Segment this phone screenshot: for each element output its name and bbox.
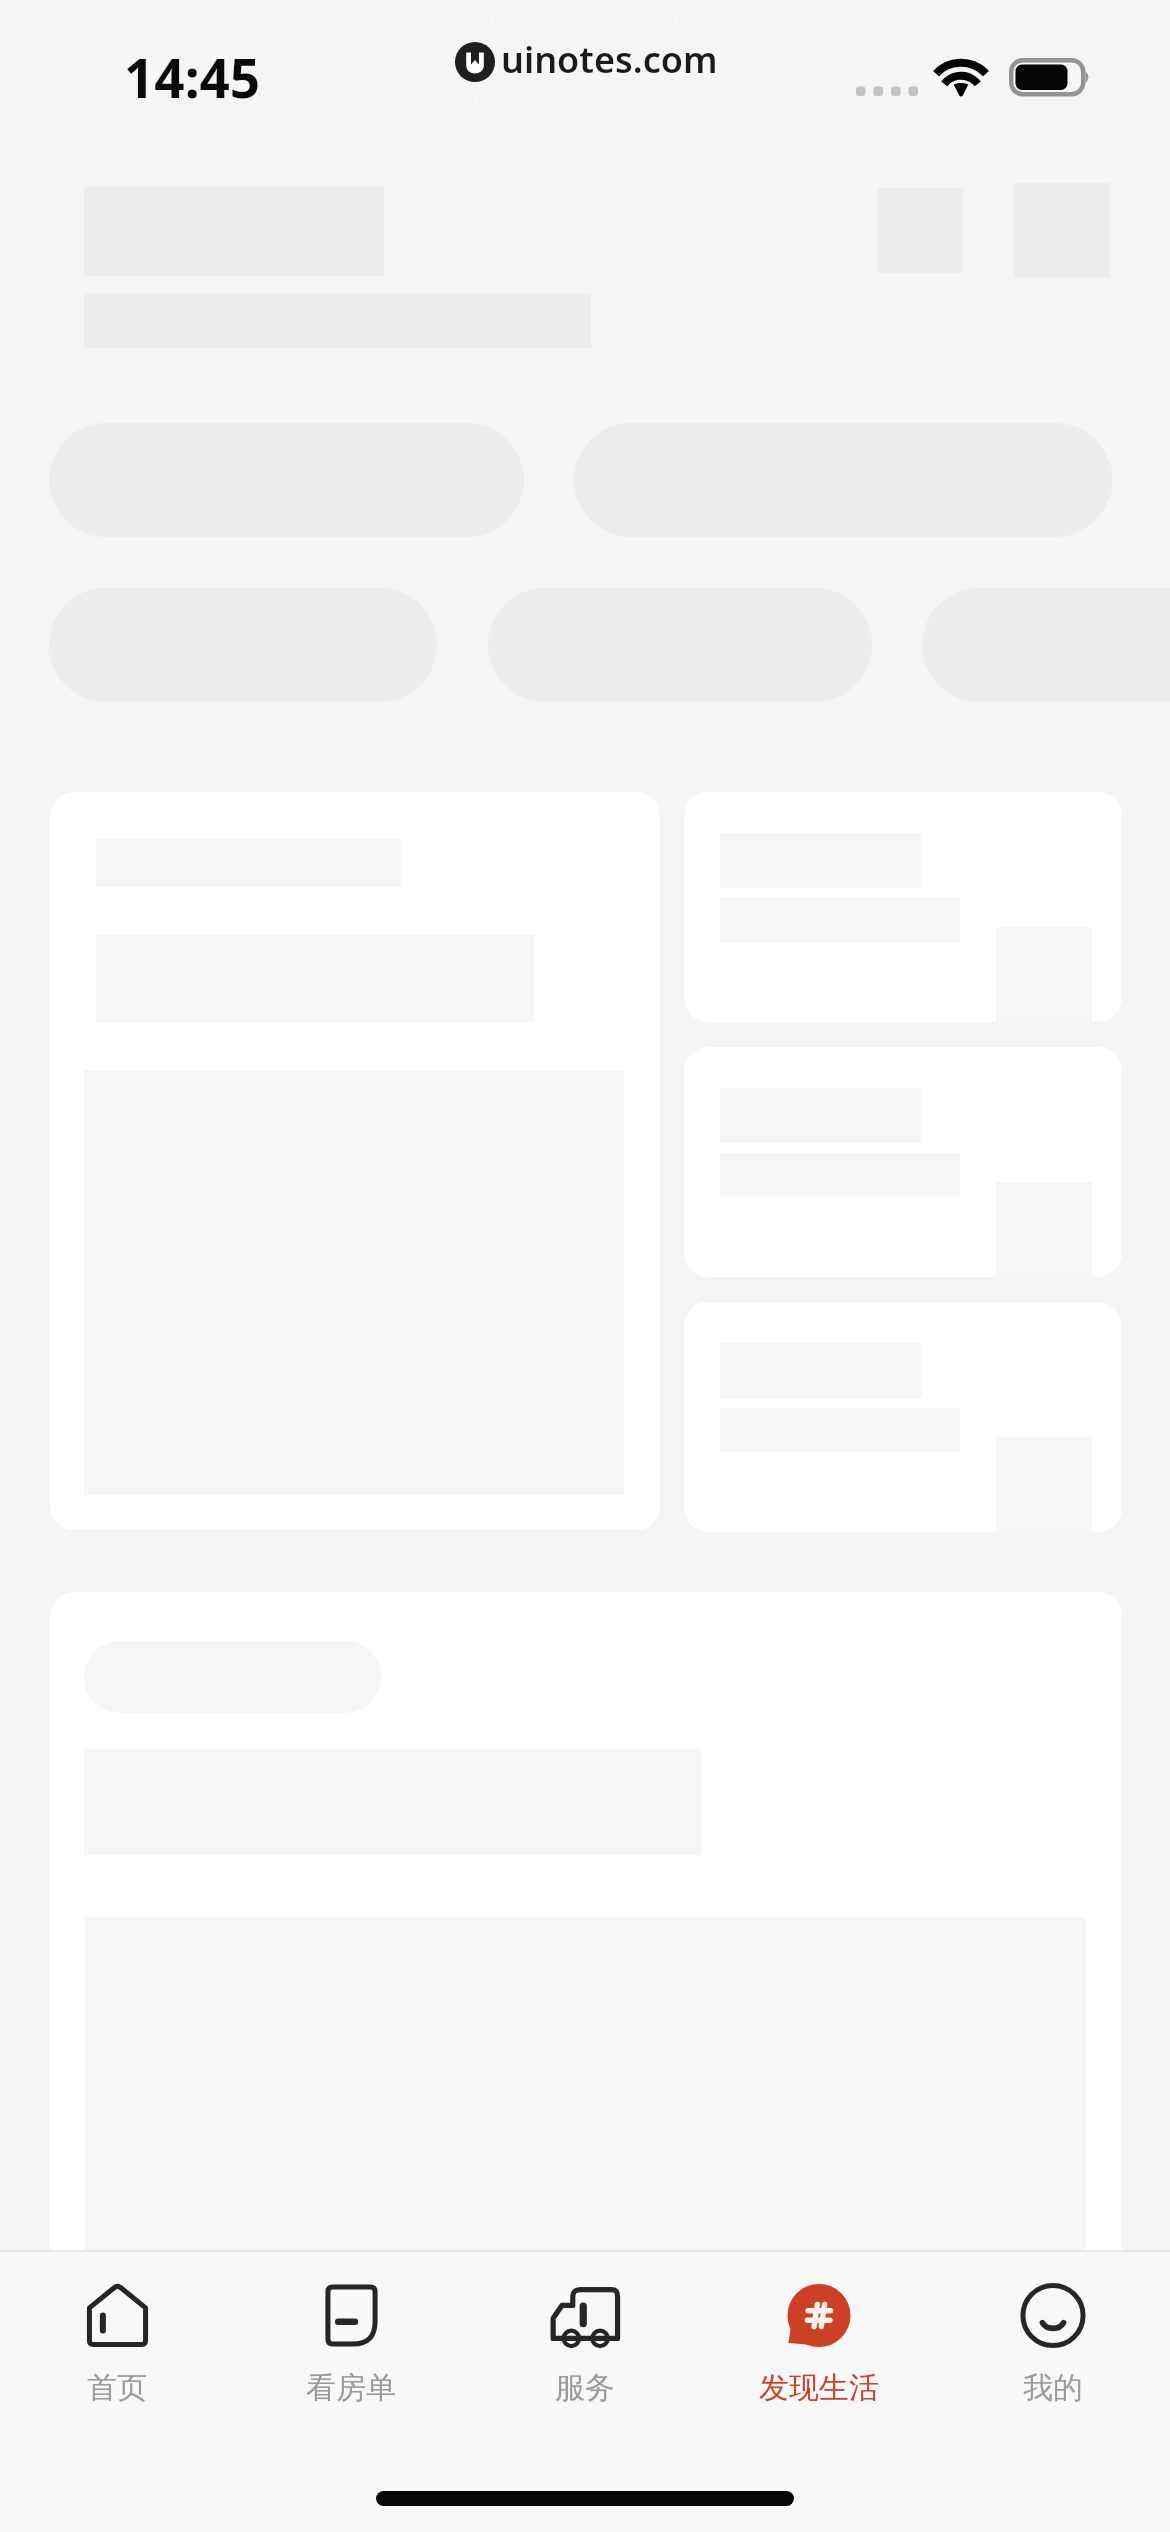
- staticText: uinotes.com: [501, 35, 718, 84]
- button[interactable]: [684, 792, 1122, 1022]
- staticText: 我的: [1023, 2369, 1083, 2407]
- button[interactable]: [684, 1302, 1122, 1532]
- staticText: 首页: [87, 2369, 147, 2407]
- other: 我的: [1021, 2284, 1085, 2347]
- button[interactable]: [50, 1592, 1122, 2352]
- other: 服务: [550, 2285, 620, 2346]
- button[interactable]: 首页: [0, 2250, 234, 2407]
- other: 首页: [87, 2284, 148, 2347]
- staticText: 服务: [555, 2369, 615, 2407]
- button[interactable]: 服务: [468, 2250, 702, 2407]
- other: 看房单: [325, 2284, 378, 2347]
- staticText: 看房单: [306, 2369, 396, 2407]
- staticText: 14:45: [124, 41, 261, 113]
- staticText: 发现生活: [759, 2369, 879, 2407]
- button[interactable]: 我的: [936, 2250, 1170, 2407]
- other: 发现生活: [786, 2284, 852, 2347]
- button[interactable]: 发现生活: [702, 2250, 936, 2407]
- button[interactable]: [50, 792, 660, 1530]
- button[interactable]: 看房单: [234, 2250, 468, 2407]
- button[interactable]: [684, 1047, 1122, 1277]
